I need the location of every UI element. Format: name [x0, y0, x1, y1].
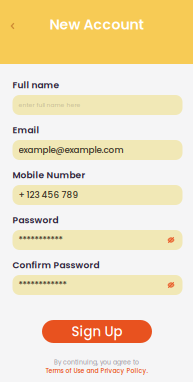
staticText: Terms of Use and Privacy Policy. [45, 367, 147, 375]
staticText: enter full name here [18, 101, 80, 109]
staticText: New Account [49, 15, 143, 34]
button[interactable]: Terms of Use and Privacy Policy. [45, 367, 147, 375]
staticText: Full name [12, 79, 59, 91]
staticText: Email [12, 124, 39, 136]
staticText: *********** [18, 234, 62, 246]
staticText: ************ [18, 279, 66, 291]
button[interactable]: Back [4, 17, 22, 35]
staticText: Confirm Password [12, 259, 99, 271]
button[interactable]: enter full name here [12, 95, 182, 115]
staticText: Mobile Number [12, 169, 85, 181]
button[interactable]: example@example.com [12, 140, 182, 160]
staticText: + 123 456 789 [18, 189, 78, 201]
staticText: Sign Up [71, 322, 122, 341]
button[interactable]: *********** [12, 230, 182, 250]
staticText: example@example.com [18, 144, 123, 156]
button[interactable]: Sign Up [42, 320, 152, 343]
staticText: By continuing, you agree to [54, 358, 139, 367]
button[interactable]: + 123 456 789 [12, 185, 182, 205]
staticText: Password [12, 214, 58, 226]
button[interactable]: ************ [12, 275, 182, 295]
